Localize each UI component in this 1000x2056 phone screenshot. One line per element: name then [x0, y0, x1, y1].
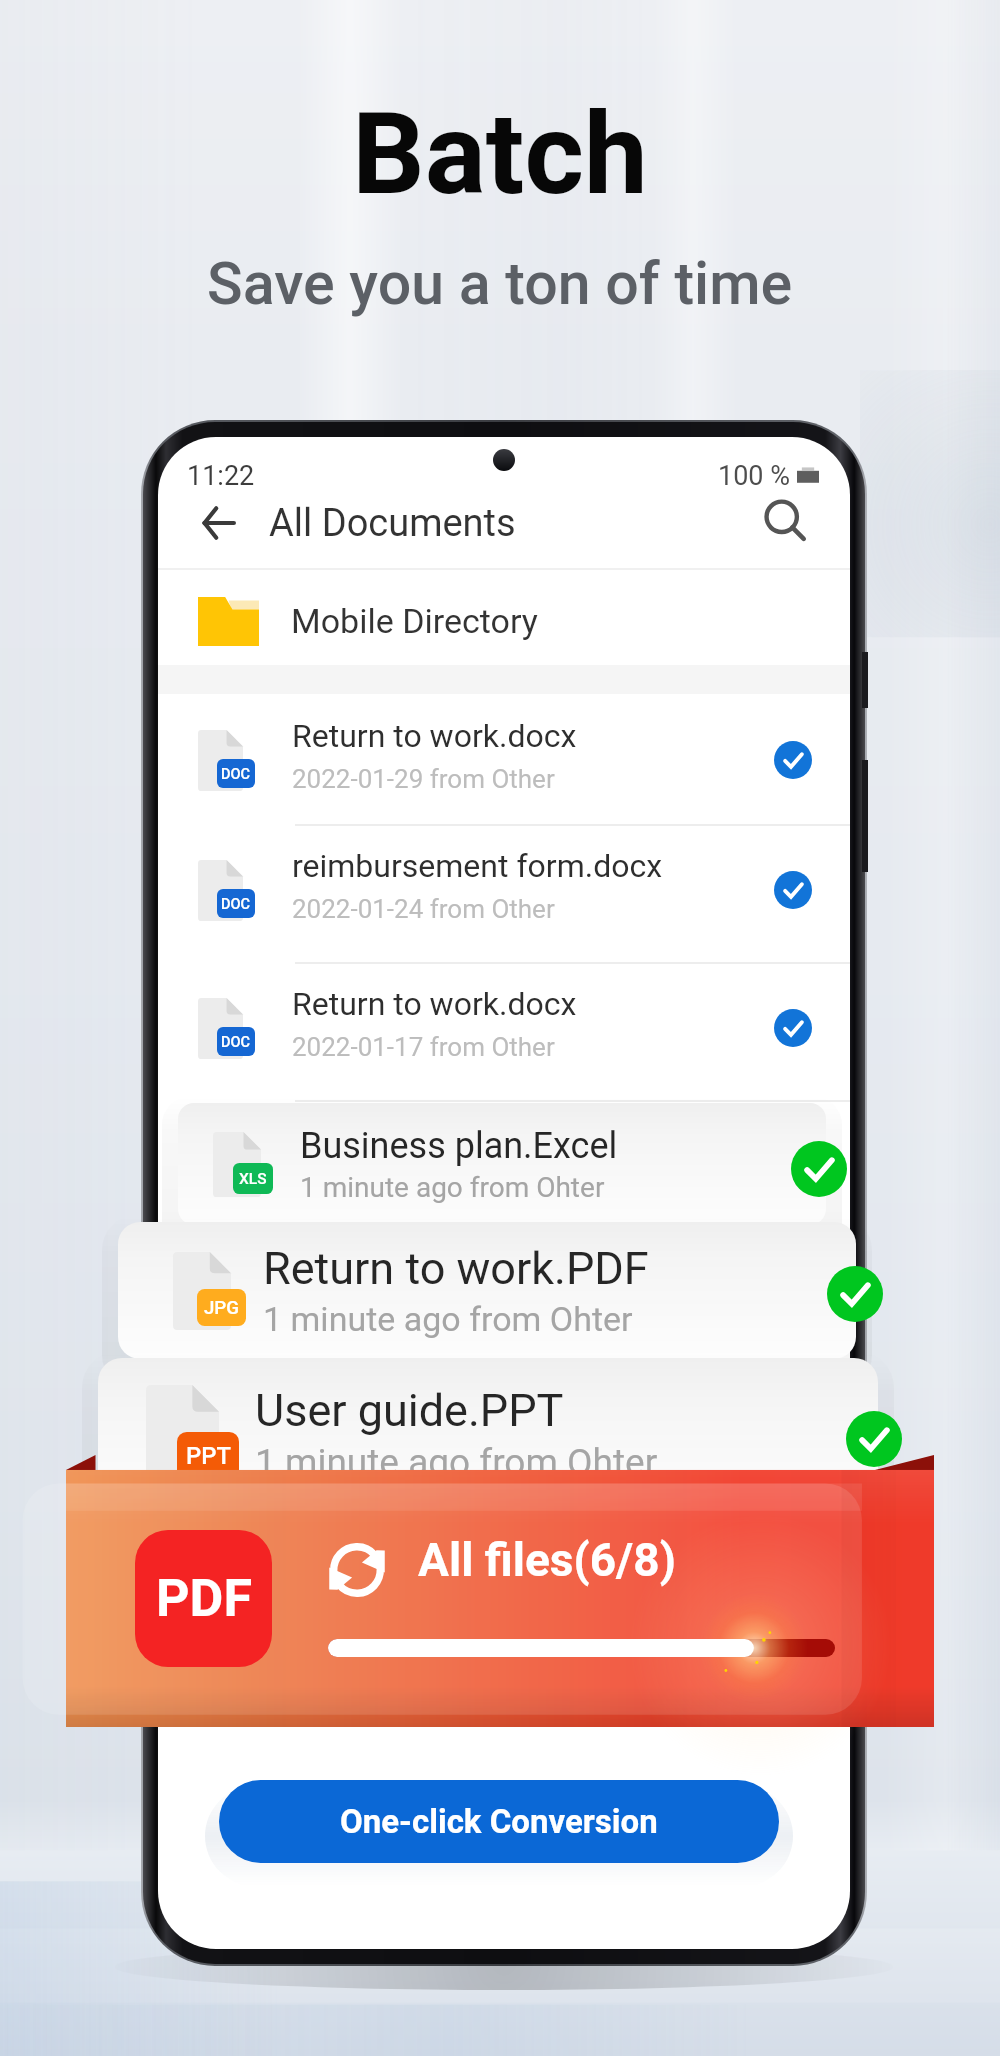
staticText: 100 %	[718, 460, 790, 492]
staticText: DOC	[221, 1033, 251, 1050]
staticText: reimbursement form.docx	[292, 847, 663, 885]
staticText: All files(6/8)	[418, 1533, 676, 1587]
button[interactable]: DOC	[158, 962, 850, 1094]
button[interactable]: XLS	[178, 1103, 826, 1225]
staticText: PDF	[156, 1568, 252, 1629]
staticText: User guide.PPT	[255, 1384, 564, 1437]
staticText: One-click Conversion	[340, 1802, 658, 1841]
staticText: DOC	[221, 765, 251, 782]
staticText: All Documents	[269, 501, 516, 546]
button[interactable]: DOC	[158, 824, 850, 956]
staticText: 2022-01-17 from Other	[292, 1032, 555, 1062]
button[interactable]: Selected	[774, 871, 812, 909]
button[interactable]: Search	[757, 493, 817, 553]
staticText: 11:22	[187, 460, 255, 492]
button[interactable]: Selected	[791, 1141, 847, 1197]
staticText: 1 minute ago from Ohter	[255, 1441, 658, 1484]
staticText: 2022-01-24 from Other	[292, 894, 555, 924]
staticText: 2022-01-29 from Other	[292, 764, 555, 794]
button[interactable]: Back	[191, 495, 247, 551]
staticText: Business plan.Excel	[300, 1125, 618, 1167]
staticText: 1 minute ago from Ohter	[300, 1171, 605, 1204]
button[interactable]: Mobile Directory	[158, 576, 850, 666]
button[interactable]: Selected	[774, 741, 812, 779]
staticText: Return to work.docx	[292, 717, 577, 755]
staticText: Return to work.docx	[292, 985, 577, 1023]
other: Converting	[329, 1542, 385, 1598]
button[interactable]: PPT	[98, 1358, 878, 1510]
staticText: Save you a ton of time	[207, 249, 793, 318]
staticText: XLS	[239, 1170, 267, 1188]
button[interactable]: DOC	[158, 694, 850, 826]
button[interactable]: JPG	[118, 1222, 856, 1359]
staticText: DOC	[221, 895, 251, 912]
staticText: Return to work.PDF	[263, 1242, 649, 1295]
staticText: 1 minute ago from Ohter	[263, 1299, 633, 1339]
staticText: Mobile Directory	[291, 601, 538, 641]
button[interactable]: Selected	[846, 1411, 902, 1467]
staticText: JPG	[204, 1297, 240, 1319]
button[interactable]: Selected	[774, 1009, 812, 1047]
button[interactable]: One-click Conversion	[219, 1780, 779, 1863]
staticText: Batch	[352, 87, 648, 221]
staticText: PPT	[186, 1442, 231, 1470]
button[interactable]: Selected	[827, 1266, 883, 1322]
button[interactable]: PDF	[135, 1530, 272, 1667]
